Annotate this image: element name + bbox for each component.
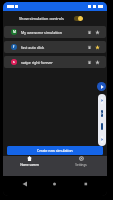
button[interactable]: s xyxy=(4,56,106,68)
button[interactable]: M xyxy=(4,26,106,38)
button[interactable]: Control xyxy=(101,110,103,117)
button[interactable]: Favorite xyxy=(93,58,101,66)
staticText: My awesome simulation xyxy=(21,30,85,35)
button[interactable]: Favorite xyxy=(93,43,101,51)
staticText: M xyxy=(13,30,16,34)
button[interactable]: Control xyxy=(101,136,103,143)
button[interactable]: Play xyxy=(97,82,106,91)
button[interactable]: Control xyxy=(101,123,103,130)
button[interactable]: Control xyxy=(101,97,103,104)
staticText: Settings xyxy=(75,163,87,167)
staticText: Home screen xyxy=(20,163,39,167)
button[interactable]: Delete xyxy=(85,58,93,66)
staticText: Show simulation controls xyxy=(19,16,64,21)
button[interactable]: Delete xyxy=(85,43,93,51)
button[interactable]: Favorite xyxy=(93,28,101,36)
button[interactable]: Settings xyxy=(55,156,107,167)
button[interactable]: Delete xyxy=(85,28,93,36)
staticText: swipe right forever xyxy=(21,60,85,65)
staticText: f xyxy=(13,45,15,49)
button[interactable]: Home screen xyxy=(3,156,55,167)
staticText: fast auto click xyxy=(21,45,85,50)
staticText: s xyxy=(13,60,15,64)
button[interactable] xyxy=(74,16,83,21)
button[interactable]: Create new simulation xyxy=(7,146,103,155)
staticText: Create new simulation xyxy=(37,148,73,153)
button[interactable]: f xyxy=(4,41,106,53)
